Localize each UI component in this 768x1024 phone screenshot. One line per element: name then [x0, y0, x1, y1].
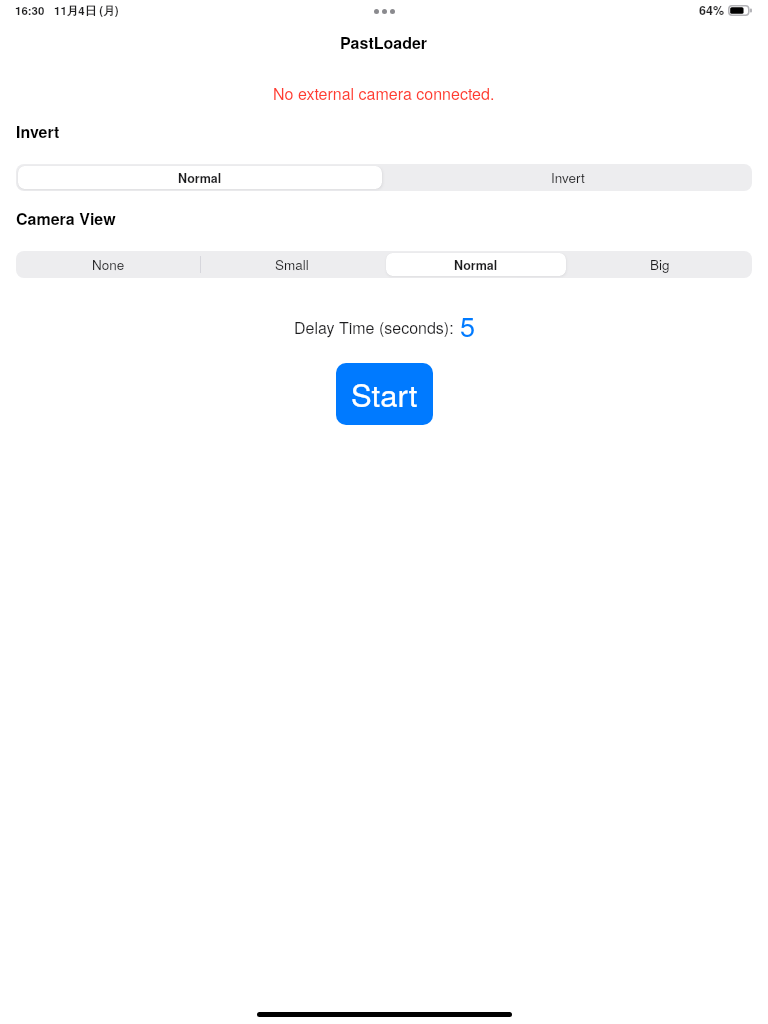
staticText: No external camera connected. — [273, 82, 495, 105]
staticText: 5 — [460, 306, 476, 345]
button[interactable]: None — [16, 251, 200, 278]
staticText: Normal — [178, 169, 222, 187]
staticText: None — [92, 255, 125, 274]
button[interactable]: Invert — [384, 164, 752, 191]
staticText: Delay Time (seconds): — [294, 316, 459, 339]
staticText: PastLoader — [340, 31, 428, 54]
staticText: Normal — [454, 256, 498, 274]
staticText: Invert — [16, 120, 60, 143]
staticText: Start — [351, 371, 418, 415]
staticText: Small — [275, 255, 309, 274]
staticText: Big — [650, 255, 670, 274]
staticText: 64% — [699, 1, 725, 19]
button[interactable]: Big — [568, 251, 752, 278]
other: Battery 64 percent — [728, 5, 753, 16]
button[interactable]: Normal — [16, 164, 384, 191]
button[interactable]: Start — [336, 363, 433, 425]
staticText: 16:30 11月4日 (月) — [15, 2, 119, 18]
button[interactable]: Small — [200, 251, 384, 278]
staticText: Camera View — [16, 207, 116, 230]
button[interactable]: Normal — [384, 251, 568, 278]
staticText: Invert — [551, 168, 585, 187]
other: Home indicator — [257, 1012, 512, 1017]
